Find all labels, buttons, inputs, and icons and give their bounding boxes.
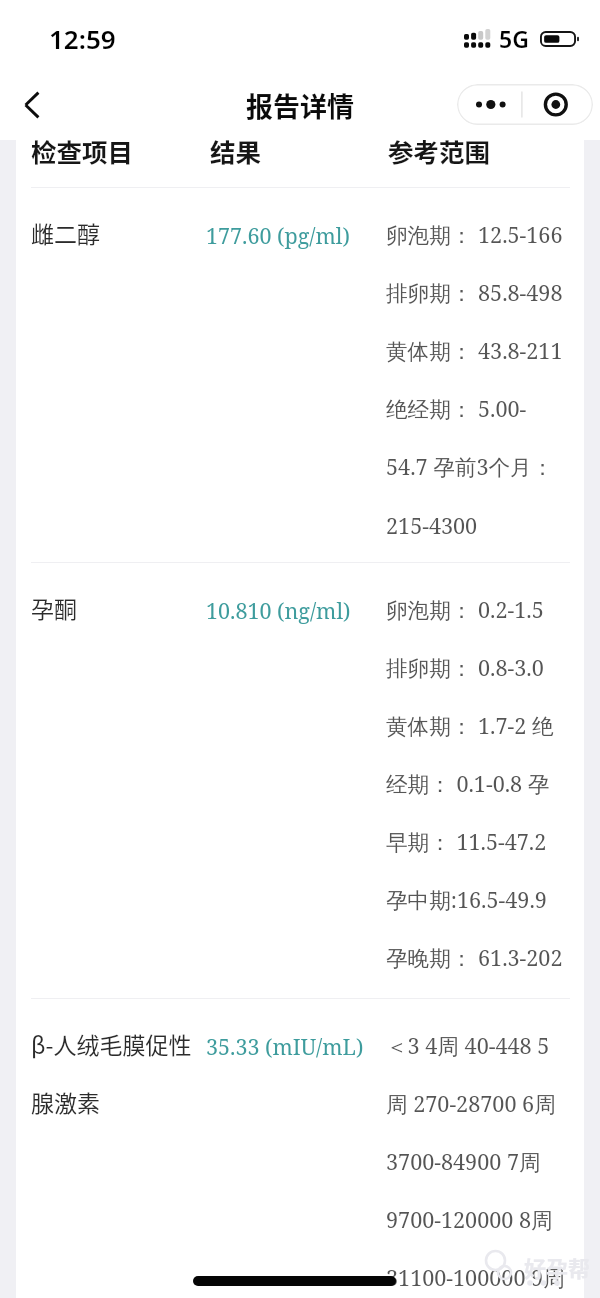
staticText: 177.60 (pg/ml) — [206, 221, 350, 250]
staticText: 结果 — [210, 132, 262, 169]
button[interactable]: 孕酮 — [16, 563, 584, 998]
staticText: 腺激素 — [31, 1085, 100, 1118]
staticText: 10.810 (ng/ml) — [206, 596, 351, 625]
staticText: 排卵期： 0.8-3.0 — [386, 653, 544, 683]
staticText: β-人绒毛膜促性 — [31, 1027, 192, 1060]
button[interactable]: Back — [6, 79, 58, 131]
button[interactable]: 雌二醇 — [16, 188, 584, 562]
button[interactable]: More options — [457, 84, 593, 125]
staticText: 报告详情 — [246, 86, 354, 125]
staticText: 黄体期： 1.7-2 绝 — [386, 711, 554, 741]
staticText: 好孕帮 — [524, 1251, 591, 1283]
staticText: 5G — [499, 23, 529, 54]
staticText: 早期： 11.5-47.2 — [386, 827, 547, 857]
staticText: 雌二醇 — [31, 216, 100, 249]
staticText: 卵泡期： 12.5-166 — [386, 220, 563, 250]
staticText: 孕中期:16.5-49.9 — [386, 885, 547, 915]
staticText: 215-4300 — [386, 511, 478, 540]
staticText: 绝经期： 5.00- — [386, 394, 527, 424]
staticText: 孕酮 — [31, 591, 77, 624]
staticText: 35.33 (mIU/mL) — [206, 1032, 364, 1061]
staticText: 3700-84900 7周 — [386, 1147, 541, 1177]
staticText: 经期： 0.1-0.8 孕 — [386, 769, 550, 799]
staticText: 9700-120000 8周 — [386, 1205, 553, 1235]
staticText: 参考范围 — [388, 132, 491, 169]
staticText: ＜3 4周 40-448 5 — [386, 1031, 550, 1061]
staticText: 周 270-28700 6周 — [386, 1089, 556, 1119]
staticText: 排卵期： 85.8-498 — [386, 278, 563, 308]
staticText: 检查项目 — [31, 132, 134, 169]
staticText: 孕晚期： 61.3-202 — [386, 943, 563, 973]
staticText: 31100-100000 9周 — [386, 1263, 565, 1293]
button[interactable]: β-人绒毛膜促性 — [16, 999, 584, 1298]
staticText: 12:59 — [49, 21, 116, 56]
staticText: 黄体期： 43.8-211 — [386, 336, 563, 366]
staticText: 54.7 孕前3个月： — [386, 452, 554, 482]
staticText: 卵泡期： 0.2-1.5 — [386, 595, 544, 625]
